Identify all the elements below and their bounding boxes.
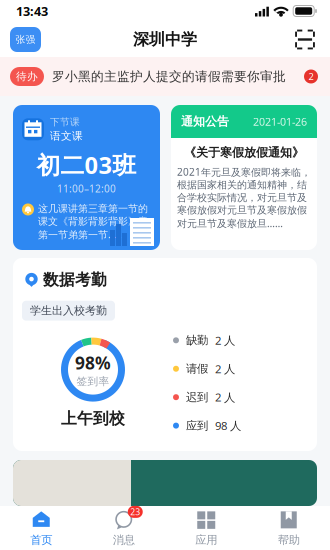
button[interactable]: 23 xyxy=(82,506,165,550)
button[interactable]: Scan xyxy=(290,25,320,53)
staticText: 13:43 xyxy=(16,2,48,20)
staticText: 初二03班 xyxy=(36,149,136,181)
button[interactable]: 首页 xyxy=(0,506,82,550)
staticText: 张强 xyxy=(15,33,35,46)
staticText: 帮助 xyxy=(278,533,300,547)
staticText: 学生出入校考勤 xyxy=(30,304,107,318)
button[interactable]: Campus photo xyxy=(13,460,317,506)
staticText: 下节课 xyxy=(50,116,80,128)
staticText: 这几课讲第三章第一节的课文《背影背影背影》章第一节弟第一节…… xyxy=(38,202,148,241)
staticText: 数据考勤 xyxy=(43,270,107,290)
staticText: 签到率 xyxy=(76,375,109,388)
staticText: 首页 xyxy=(30,533,52,547)
button[interactable]: 下节课 xyxy=(13,105,160,250)
button[interactable]: 应用 xyxy=(165,506,247,550)
staticText: 2 xyxy=(308,70,313,83)
staticText: 98% xyxy=(75,351,111,375)
button[interactable]: 帮助 xyxy=(247,506,330,550)
staticText: 语文课 xyxy=(50,129,83,143)
staticText: 上午到校 xyxy=(61,409,125,428)
button[interactable]: 待办 xyxy=(0,57,330,96)
staticText: 深圳中学 xyxy=(133,29,197,50)
staticText: 迟到 xyxy=(186,390,208,404)
staticText: 2021-01-26 xyxy=(253,114,307,129)
staticText: 11:00–12:00 xyxy=(57,182,116,195)
button[interactable]: 张强 profile xyxy=(10,27,41,52)
staticText: 通知公告 xyxy=(181,114,229,129)
staticText: 2021年元旦及寒假即将来临，根据国家相关的通知精神，结合学校实际情况，对元旦节… xyxy=(177,165,311,230)
staticText: 23 xyxy=(130,506,140,518)
staticText: 2 人 xyxy=(215,389,235,405)
staticText: 罗小黑的主监护人提交的请假需要你审批 xyxy=(52,68,286,84)
staticText: 《关于寒假放假通知》 xyxy=(184,145,304,160)
staticText: 2 人 xyxy=(215,361,235,376)
button[interactable]: 通知公告 xyxy=(171,105,317,250)
staticText: 缺勤 xyxy=(186,333,208,347)
staticText: 待办 xyxy=(16,70,38,83)
staticText: 请假 xyxy=(186,362,208,376)
staticText: 98 人 xyxy=(215,418,241,433)
staticText: 2 人 xyxy=(215,333,235,348)
staticText: 消息 xyxy=(113,533,135,547)
staticText: 应到 xyxy=(186,418,208,433)
staticText: 应用 xyxy=(195,533,217,547)
